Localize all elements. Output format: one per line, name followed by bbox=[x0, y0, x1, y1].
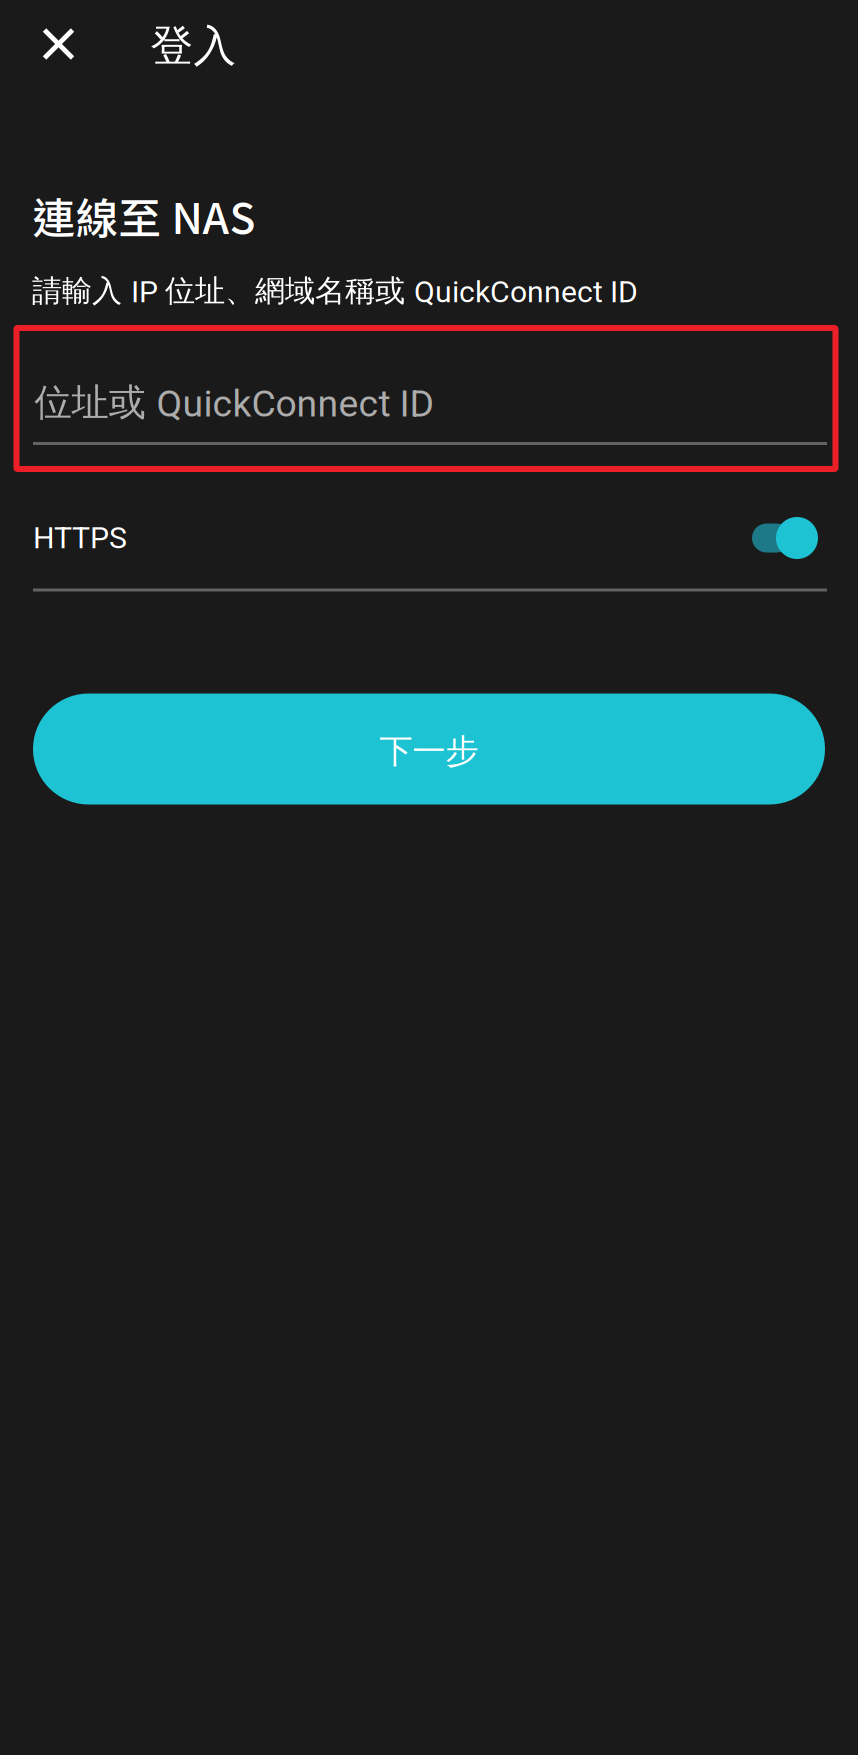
button[interactable]: Close bbox=[20, 6, 96, 82]
staticText: 下一步 bbox=[379, 730, 478, 772]
staticText: 登入 bbox=[150, 19, 236, 73]
staticText: 請輸入 IP 位址、網域名稱或 QuickConnect ID bbox=[32, 272, 638, 310]
button[interactable]: 下一步 bbox=[33, 693, 825, 804]
staticText: 連線至 NAS bbox=[32, 185, 255, 246]
button[interactable]: 位址或 QuickConnect ID bbox=[13, 325, 838, 472]
button[interactable]: HTTPS bbox=[17, 479, 842, 597]
staticText: 位址或 QuickConnect ID bbox=[34, 379, 434, 426]
staticText: HTTPS bbox=[33, 520, 127, 556]
